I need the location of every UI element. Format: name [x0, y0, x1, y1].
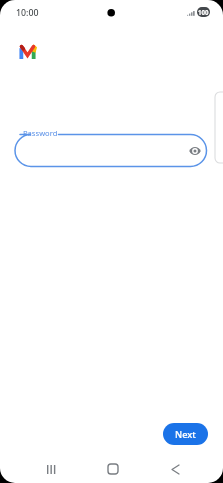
staticText: Password [23, 128, 58, 138]
staticText: 100 [198, 8, 209, 16]
staticText: 10:00 [16, 7, 39, 19]
button[interactable]: Back [157, 451, 193, 483]
staticText: Next [175, 428, 196, 441]
button[interactable]: Show password [184, 140, 206, 162]
button[interactable]: Next [163, 423, 208, 445]
button[interactable]: Home [95, 451, 131, 483]
button[interactable]: Recents [33, 451, 69, 483]
